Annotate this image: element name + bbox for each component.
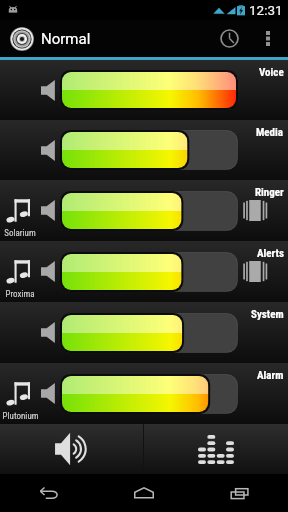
staticText: Media — [256, 126, 284, 139]
button[interactable]: Voice — [0, 60, 288, 120]
staticText: Ringer — [255, 186, 284, 199]
button[interactable]: Solarium — [0, 180, 288, 241]
button[interactable]: Back — [0, 474, 96, 512]
button[interactable]: Proxima — [0, 241, 288, 302]
button[interactable]: Home — [96, 474, 192, 512]
staticText: Voice — [259, 66, 284, 79]
staticText: Proxima — [5, 289, 35, 300]
button[interactable] — [60, 191, 238, 231]
staticText: 12:31 — [249, 2, 283, 18]
staticText: Alerts — [257, 247, 284, 260]
button[interactable]: Volume — [0, 424, 143, 474]
button[interactable] — [60, 252, 238, 292]
staticText: Solarium — [4, 228, 36, 239]
staticText: Alarm — [257, 369, 284, 382]
button[interactable]: Timer — [206, 20, 252, 57]
button[interactable]: System — [0, 302, 288, 363]
button[interactable]: Media — [0, 120, 288, 180]
staticText: System — [251, 308, 284, 321]
button[interactable]: More options — [252, 20, 284, 57]
button[interactable] — [60, 130, 238, 170]
staticText: Normal — [41, 30, 91, 48]
button[interactable]: Equalizer — [144, 424, 288, 474]
button[interactable]: Recent apps — [192, 474, 288, 512]
button[interactable]: Plutonium — [0, 363, 288, 424]
staticText: Plutonium — [2, 411, 39, 422]
button[interactable] — [60, 374, 238, 414]
button[interactable] — [60, 70, 238, 110]
button[interactable] — [60, 313, 238, 353]
